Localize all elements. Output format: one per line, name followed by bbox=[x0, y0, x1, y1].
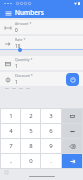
button[interactable]: Clipboard bbox=[5, 171, 8, 174]
staticText: , bbox=[10, 157, 12, 165]
button[interactable]: Calculate bbox=[66, 73, 79, 86]
button[interactable]: Open navigation menu bbox=[4, 9, 12, 17]
button[interactable]: 9 bbox=[41, 139, 61, 153]
staticText: 7 bbox=[9, 142, 13, 150]
button[interactable]: Enter bbox=[62, 154, 82, 168]
staticText: 6 bbox=[49, 127, 53, 135]
button[interactable]: Amount * bbox=[0, 20, 83, 34]
staticText: 3 bbox=[49, 112, 53, 120]
button[interactable]: Quantity * bbox=[0, 56, 83, 70]
staticText: Numbers bbox=[15, 8, 44, 17]
staticText: 1 bbox=[15, 79, 18, 85]
button[interactable]: 8 bbox=[21, 139, 40, 153]
staticText: 1 bbox=[15, 63, 18, 69]
staticText: Rate * bbox=[15, 37, 26, 42]
staticText: 0 bbox=[15, 27, 18, 33]
staticText: Quantity * bbox=[15, 57, 33, 62]
button[interactable]: Rate * bbox=[0, 36, 83, 50]
button[interactable] bbox=[0, 47, 83, 52]
button[interactable]: 0 bbox=[21, 154, 40, 168]
staticText: 9 bbox=[49, 142, 53, 150]
button[interactable]: 3 bbox=[41, 109, 61, 123]
staticText: 0 bbox=[29, 157, 33, 165]
button[interactable]: 2 bbox=[21, 109, 40, 123]
staticText: . bbox=[50, 157, 52, 165]
staticText: 8 bbox=[29, 142, 33, 150]
button[interactable]: 4 bbox=[1, 124, 20, 138]
staticText: Discount * bbox=[15, 73, 33, 78]
button[interactable]: 7 bbox=[1, 139, 20, 153]
staticText: 1 bbox=[9, 112, 13, 120]
button[interactable]: 1 bbox=[1, 109, 20, 123]
staticText: 5 bbox=[29, 127, 33, 135]
button[interactable]: Backspace bbox=[62, 139, 82, 153]
button[interactable]: , bbox=[1, 154, 20, 168]
staticText: 4 bbox=[9, 127, 13, 135]
button[interactable]: 5 bbox=[21, 124, 40, 138]
staticText: 2 bbox=[29, 112, 33, 120]
button[interactable]: Minus bbox=[62, 109, 82, 123]
button[interactable]: 6 bbox=[41, 124, 61, 138]
button[interactable]: Discount * bbox=[0, 72, 83, 86]
button[interactable]: Dash bbox=[62, 124, 82, 138]
staticText: 10 bbox=[15, 43, 21, 49]
staticText: Amount * bbox=[15, 21, 32, 26]
